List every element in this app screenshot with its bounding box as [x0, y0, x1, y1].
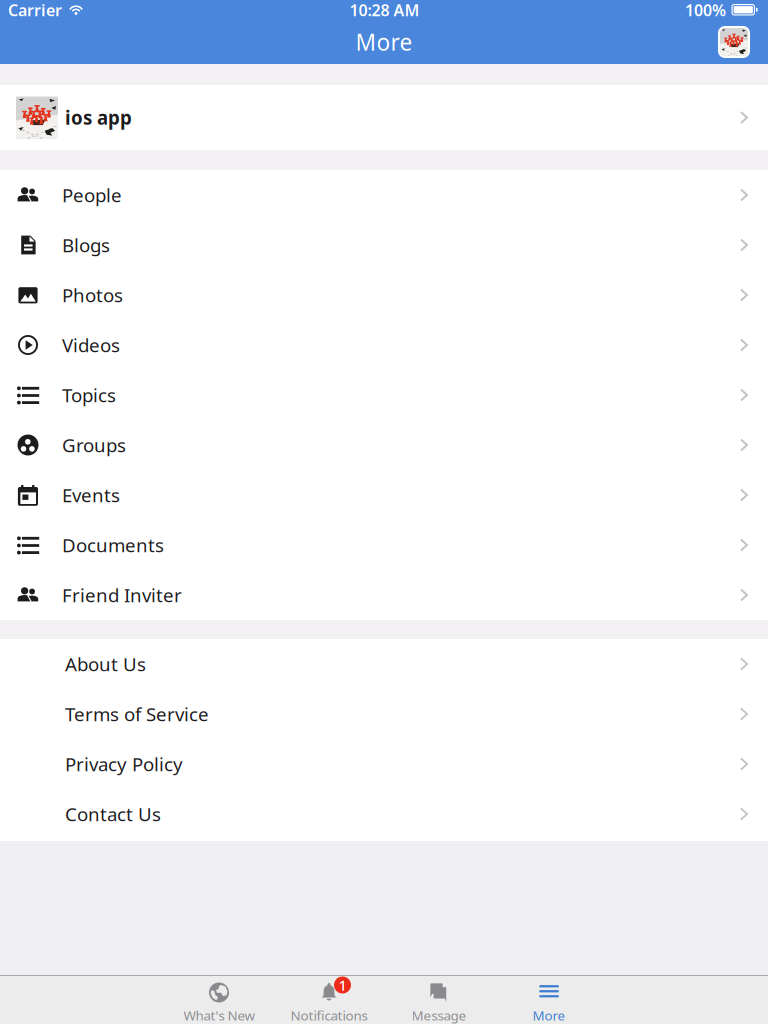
staticText: More [355, 27, 412, 57]
staticText: Contact Us [65, 802, 161, 826]
button[interactable]: ios app [0, 85, 768, 150]
staticText: Terms of Service [65, 702, 209, 726]
staticText: Friend Inviter [62, 583, 182, 607]
staticText: People [62, 183, 122, 207]
button[interactable]: Videos [0, 320, 768, 370]
staticText: Notifications [290, 1006, 367, 1024]
button[interactable]: Privacy Policy [0, 739, 768, 789]
staticText: Blogs [62, 233, 110, 257]
staticText: What's New [183, 1006, 254, 1024]
button[interactable]: Events [0, 470, 768, 520]
staticText: Photos [62, 283, 123, 307]
staticText: About Us [65, 652, 146, 676]
staticText: Carrier [8, 0, 62, 21]
button[interactable]: What's New [164, 975, 274, 1024]
button[interactable]: Friend Inviter [0, 570, 768, 620]
staticText: ios app [65, 105, 132, 130]
staticText: More [532, 1006, 565, 1024]
staticText: Videos [62, 333, 120, 357]
button[interactable]: Topics [0, 370, 768, 420]
staticText: Message [411, 1006, 466, 1024]
button[interactable]: Blogs [0, 220, 768, 270]
button[interactable]: Photos [0, 270, 768, 320]
button[interactable]: Groups [0, 420, 768, 470]
staticText: Topics [62, 383, 116, 407]
button[interactable]: 1 [274, 975, 384, 1024]
button[interactable]: Message [384, 975, 494, 1024]
button[interactable]: Documents [0, 520, 768, 570]
button[interactable]: About Us [0, 639, 768, 689]
button[interactable]: People [0, 170, 768, 220]
button[interactable]: More [494, 975, 604, 1024]
staticText: Groups [62, 433, 126, 457]
staticText: Documents [62, 533, 164, 557]
staticText: 10:28 AM [349, 0, 419, 21]
button[interactable]: Profile [718, 26, 750, 58]
staticText: Events [62, 483, 120, 507]
button[interactable]: Terms of Service [0, 689, 768, 739]
staticText: Privacy Policy [65, 752, 183, 776]
staticText: 100% [685, 0, 726, 21]
staticText: 1 [338, 975, 346, 995]
button[interactable]: Contact Us [0, 789, 768, 839]
